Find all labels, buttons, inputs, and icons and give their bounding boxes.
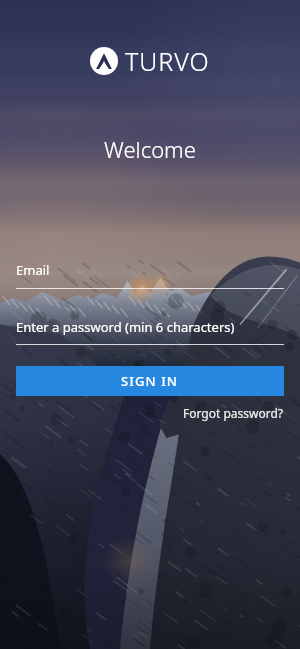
- staticText: Email: [16, 261, 50, 279]
- staticText: Enter a password (min 6 characters): [16, 318, 235, 336]
- staticText: Forgot password?: [183, 405, 284, 421]
- other: Turvo logo: [90, 47, 118, 75]
- staticText: TURVO: [125, 44, 210, 78]
- button[interactable]: SIGN IN: [16, 366, 284, 396]
- button[interactable]: Forgot password?: [183, 405, 284, 421]
- staticText: SIGN IN: [121, 372, 179, 390]
- button[interactable]: Enter a password (min 6 characters): [16, 318, 284, 345]
- staticText: Welcome: [0, 134, 300, 164]
- button[interactable]: Email: [16, 261, 284, 289]
